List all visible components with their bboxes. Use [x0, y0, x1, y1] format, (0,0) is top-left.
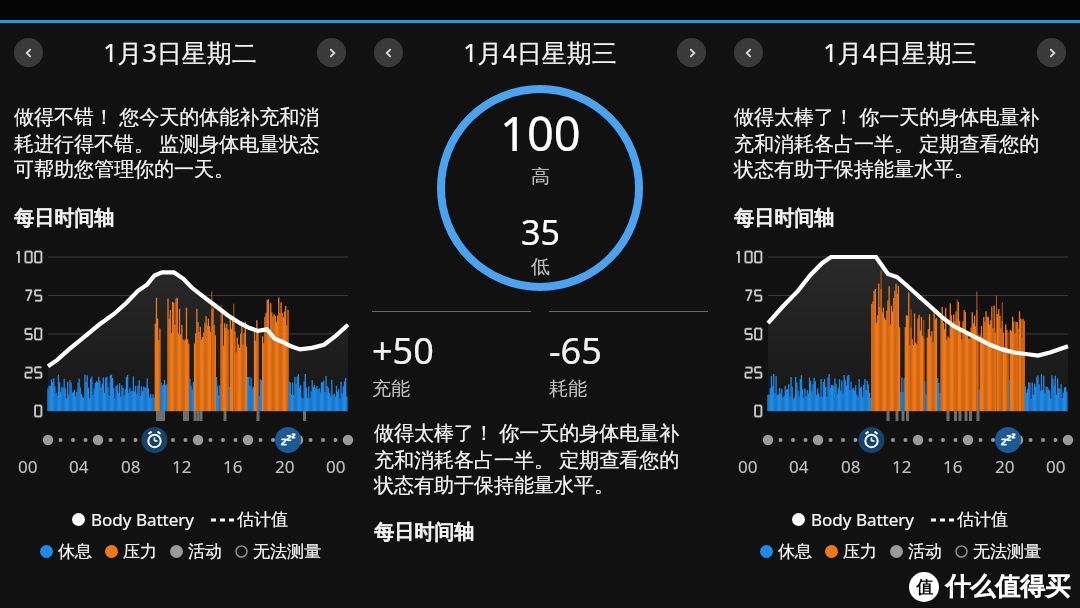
button[interactable]: Next day: [677, 38, 706, 67]
button[interactable]: Next day: [317, 38, 346, 67]
staticText: 状态有助于保持能量水平。: [734, 157, 974, 182]
staticText: 1月4日星期三: [463, 35, 617, 69]
staticText: 压力: [843, 541, 877, 562]
staticText: 16: [223, 455, 243, 478]
staticText: 35: [521, 209, 560, 255]
staticText: 1月3日星期二: [103, 35, 257, 69]
button[interactable]: Previous day: [734, 38, 763, 67]
staticText: 充能: [372, 377, 410, 401]
staticText: 估计值: [237, 509, 288, 530]
staticText: 00: [1046, 455, 1066, 478]
staticText: 16: [943, 455, 963, 478]
staticText: 高: [531, 165, 550, 189]
button[interactable]: Next day: [1037, 38, 1066, 67]
button[interactable]: Previous day: [14, 38, 43, 67]
staticText: 耗进行得不错。 监测身体电量状态: [14, 130, 320, 157]
staticText: 可帮助您管理你的一天。: [14, 157, 234, 182]
staticText: 充和消耗各占一半。 定期查看您的: [734, 130, 1040, 157]
staticText: 08: [121, 455, 141, 478]
staticText: 每日时间轴: [374, 520, 720, 545]
staticText: 00: [18, 455, 38, 478]
staticText: 每日时间轴: [734, 206, 834, 231]
staticText: 做得太棒了！ 你一天的身体电量补: [734, 103, 1040, 130]
staticText: 耗能: [549, 377, 587, 401]
staticText: 活动: [908, 541, 942, 562]
staticText: 20: [275, 455, 295, 478]
staticText: 100: [500, 101, 581, 165]
staticText: 每日时间轴: [14, 206, 114, 231]
staticText: 休息: [778, 541, 812, 562]
staticText: 无法测量: [253, 541, 321, 562]
staticText: 充和消耗各占一半。 定期查看您的: [374, 446, 680, 473]
staticText: 08: [841, 455, 861, 478]
staticText: 12: [892, 455, 912, 478]
staticText: 04: [789, 455, 809, 478]
staticText: Body Battery: [91, 508, 195, 531]
staticText: 状态有助于保持能量水平。: [374, 473, 614, 498]
staticText: 12: [172, 455, 192, 478]
staticText: 低: [531, 255, 550, 279]
staticText: 做得不错！ 您今天的体能补充和消: [14, 103, 320, 130]
staticText: 休息: [58, 541, 92, 562]
staticText: 什么值得买: [945, 571, 1070, 602]
staticText: 20: [995, 455, 1015, 478]
staticText: 做得太棒了！ 你一天的身体电量补: [374, 419, 680, 446]
staticText: 00: [326, 455, 346, 478]
staticText: 04: [69, 455, 89, 478]
staticText: 压力: [123, 541, 157, 562]
staticText: -65: [549, 326, 602, 375]
staticText: +50: [372, 326, 434, 375]
staticText: 活动: [188, 541, 222, 562]
staticText: 无法测量: [973, 541, 1041, 562]
staticText: Body Battery: [811, 508, 915, 531]
staticText: 1月4日星期三: [823, 35, 977, 69]
staticText: 值: [916, 577, 933, 598]
button[interactable]: Previous day: [374, 38, 403, 67]
staticText: 00: [738, 455, 758, 478]
staticText: 估计值: [957, 509, 1008, 530]
